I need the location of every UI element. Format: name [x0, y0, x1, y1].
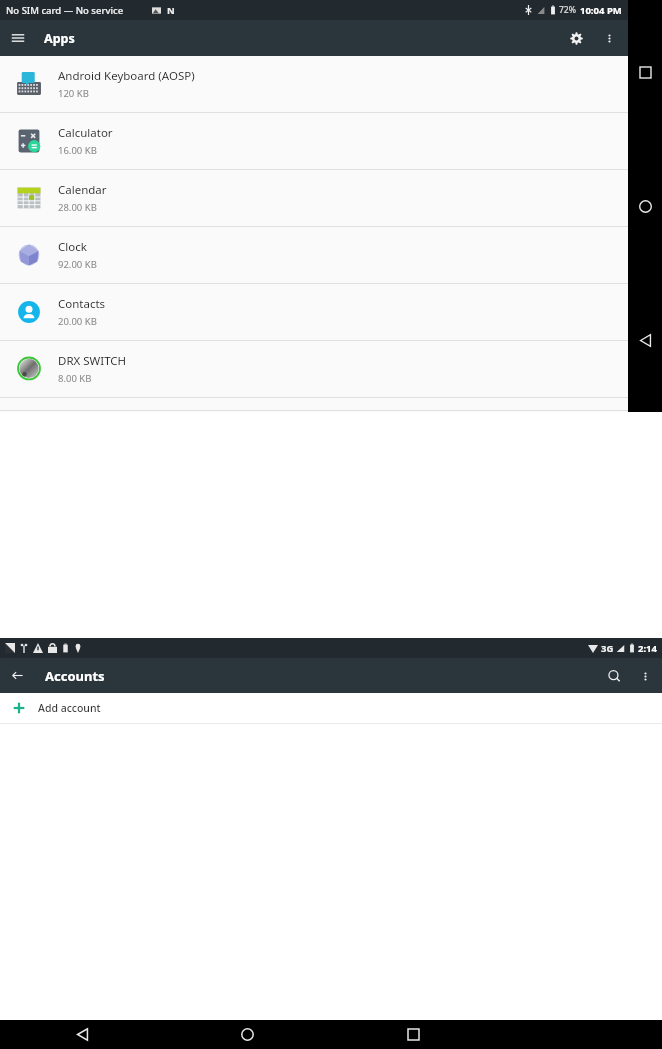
button[interactable]: Contacts — [0, 284, 628, 341]
staticText: 8.00 KB — [58, 372, 92, 385]
button[interactable]: Home — [165, 1020, 330, 1049]
staticText: Calculator — [58, 125, 113, 141]
staticText: 120 KB — [58, 87, 89, 100]
staticText: Calendar — [58, 182, 107, 198]
staticText: N — [167, 4, 175, 17]
staticText: DRX SWITCH — [58, 353, 127, 369]
button[interactable]: Recent apps — [330, 1020, 496, 1049]
staticText: Android Keyboard (AOSP) — [58, 68, 195, 84]
button[interactable]: Add account — [0, 693, 662, 723]
staticText: Contacts — [58, 296, 106, 312]
staticText: 28.00 KB — [58, 201, 97, 214]
staticText: 16.00 KB — [58, 144, 97, 157]
staticText: 92.00 KB — [58, 258, 97, 271]
staticText: 72% — [559, 4, 576, 16]
button[interactable]: Search — [597, 659, 631, 693]
button[interactable]: Recent apps — [628, 55, 662, 89]
staticText: 3G — [601, 642, 614, 655]
button[interactable]: Home — [628, 189, 662, 223]
button[interactable]: More options — [594, 23, 624, 53]
staticText: 2:14 — [638, 642, 657, 655]
button[interactable]: Back — [0, 1020, 165, 1049]
button[interactable]: Settings — [558, 20, 594, 56]
button[interactable]: Back — [628, 323, 662, 357]
button[interactable]: DRX SWITCH — [0, 341, 628, 398]
staticText: 20.00 KB — [58, 315, 97, 328]
button[interactable]: Calendar — [0, 170, 628, 227]
staticText: Accounts — [45, 667, 105, 685]
staticText: 10:04 PM — [580, 4, 622, 17]
button[interactable]: Back — [0, 658, 35, 693]
button[interactable]: Navigation menu — [0, 20, 36, 56]
staticText: No SIM card — No service — [6, 4, 124, 17]
button[interactable]: Clock — [0, 227, 628, 284]
button[interactable]: Calculator — [0, 113, 628, 170]
staticText: Apps — [44, 30, 75, 47]
staticText: Clock — [58, 239, 87, 255]
button[interactable]: More options — [631, 662, 659, 690]
staticText: Add account — [38, 701, 101, 715]
button[interactable]: Android Keyboard (AOSP) — [0, 56, 628, 113]
